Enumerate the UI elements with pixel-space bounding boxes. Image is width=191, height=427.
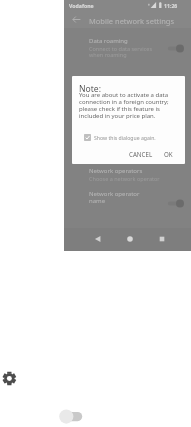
- button[interactable]: Show this dialogue again.: [84, 131, 156, 143]
- staticText: 11:26: [164, 2, 178, 9]
- staticText: Network operators: [89, 167, 143, 175]
- staticText: Connect to data services when roaming: [89, 45, 153, 59]
- staticText: CANCEL: [129, 150, 153, 158]
- button[interactable]: Toggle: [166, 198, 185, 209]
- button[interactable]: OK: [162, 148, 175, 160]
- button[interactable]: Toggle: [58, 408, 84, 425]
- button[interactable]: Home: [123, 232, 137, 246]
- staticText: Data roaming: [89, 37, 128, 45]
- button[interactable]: CANCEL: [127, 148, 155, 160]
- button[interactable]: Recent apps: [155, 232, 169, 246]
- staticText: Network operator name: [89, 190, 140, 205]
- button[interactable]: Settings: [2, 371, 18, 387]
- button[interactable]: Back: [91, 232, 105, 246]
- button[interactable]: Back: [70, 13, 83, 26]
- staticText: Mobile network settings: [89, 16, 175, 26]
- staticText: Choose a network operator: [89, 175, 160, 182]
- staticText: OK: [164, 150, 173, 158]
- staticText: Note:: [79, 83, 101, 95]
- staticText: Vodafone: [69, 2, 94, 9]
- staticText: Show this dialogue again.: [94, 134, 156, 141]
- staticText: You are about to activate a data connect…: [79, 91, 169, 120]
- button[interactable]: Toggle: [166, 43, 185, 54]
